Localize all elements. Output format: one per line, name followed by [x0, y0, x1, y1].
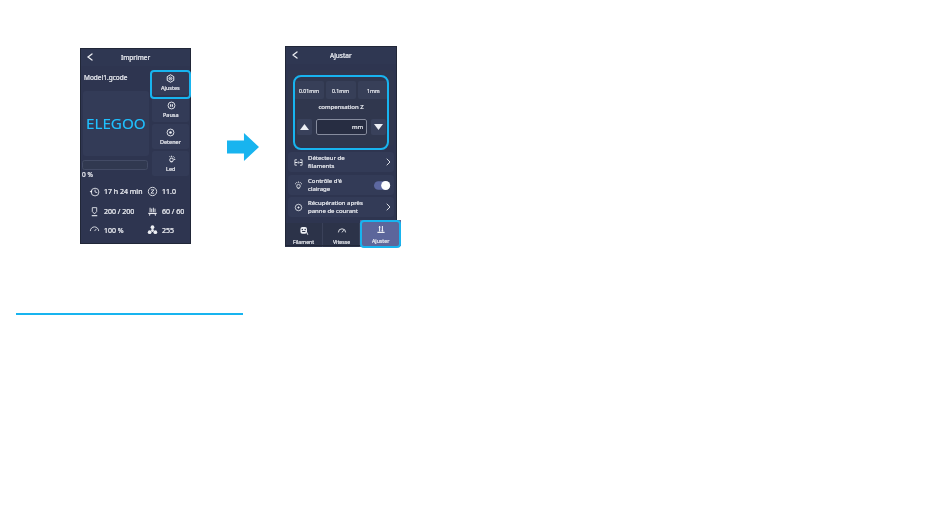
staticText: Contrôle d'é clairage [308, 177, 374, 193]
button[interactable]: 0.1mm [326, 81, 356, 99]
button[interactable]: Filament [285, 223, 323, 247]
staticText: Ajustar [330, 51, 352, 60]
staticText: 0.01mm [299, 87, 319, 94]
button[interactable]: Ajuster tab [360, 220, 401, 246]
button[interactable]: Increase [297, 119, 312, 135]
staticText: 0 % [82, 170, 93, 179]
button[interactable]: Back [82, 49, 98, 65]
staticText: Model1.gcode [84, 73, 128, 82]
staticText: mm [352, 123, 364, 131]
staticText: 11.0 [162, 187, 176, 197]
staticText: Imprimer [121, 53, 151, 62]
button[interactable]: Ajuster [360, 223, 397, 247]
staticText: compensation Z [294, 103, 388, 111]
staticText: Led [166, 165, 176, 172]
staticText: 255 [162, 226, 175, 236]
staticText: 17 h 24 min [104, 187, 143, 197]
button[interactable]: Detener [152, 124, 189, 149]
staticText: Détecteur de filaments [308, 154, 387, 170]
button[interactable]: Back [287, 47, 303, 63]
button[interactable]: Pausa [152, 97, 189, 122]
button[interactable]: Contrôle d'é clairage [288, 175, 394, 195]
staticText: 0.1mm [332, 87, 350, 94]
button[interactable]: Toggle lighting [374, 181, 390, 190]
staticText: Ajuster [372, 237, 390, 244]
staticText: 60 / 60 [162, 207, 185, 217]
staticText: Detener [160, 138, 181, 145]
button[interactable]: Ajustes button [150, 70, 191, 99]
button[interactable]: Decrease [371, 119, 386, 135]
staticText: Filament [293, 238, 315, 245]
button[interactable]: Récupération après panne de courant [288, 197, 394, 217]
staticText: Ajustes [161, 84, 180, 91]
button[interactable]: Vitesse [323, 223, 360, 247]
staticText: 200 / 200 [104, 207, 135, 217]
staticText: 1mm [367, 87, 380, 94]
staticText: Pausa [163, 111, 179, 118]
button[interactable]: 0.01mm [294, 81, 324, 99]
button[interactable]: Ajustes [152, 70, 189, 95]
staticText: 100 % [104, 226, 124, 236]
button[interactable]: Led [152, 151, 189, 176]
staticText: Récupération après panne de courant [308, 199, 387, 215]
button[interactable]: Détecteur de filaments [288, 152, 394, 172]
staticText: Ajuster [370, 238, 388, 245]
button[interactable]: 1mm [358, 81, 388, 99]
staticText: ELEGOO [86, 113, 146, 134]
staticText: Vitesse [333, 238, 351, 245]
